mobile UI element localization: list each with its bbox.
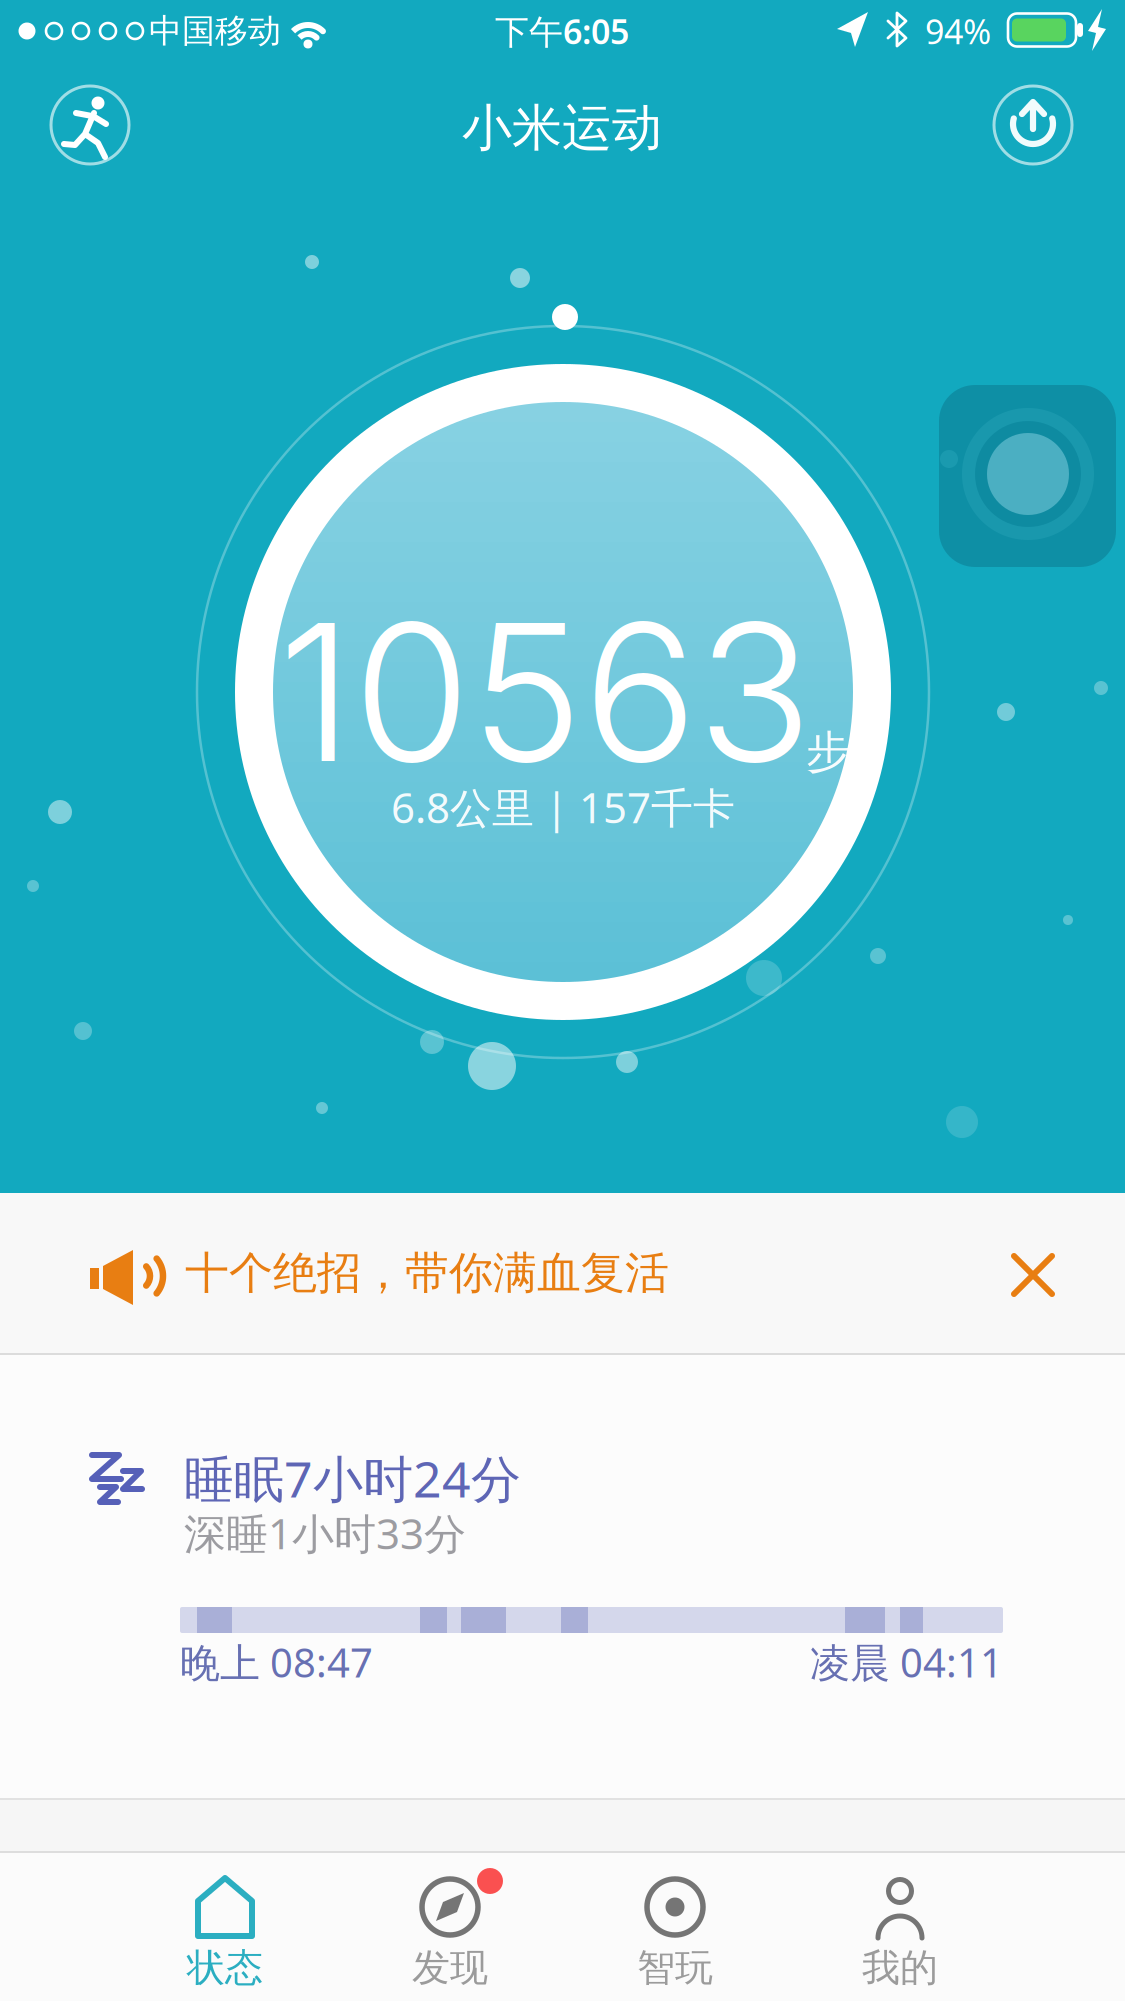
staticText: 94% xyxy=(925,8,991,54)
button[interactable]: 发现 xyxy=(337,1853,562,2001)
staticText: 小米运动 xyxy=(462,96,662,159)
button[interactable]: 状态 xyxy=(112,1853,337,2001)
button[interactable]: 智玩 xyxy=(562,1853,787,2001)
staticText: 下午6:05 xyxy=(495,8,629,54)
staticText: 晚上 08:47 xyxy=(180,1635,373,1689)
button[interactable]: 运动 xyxy=(49,84,131,166)
staticText: 睡眠7小时24分 xyxy=(184,1444,521,1512)
button[interactable]: 关闭 xyxy=(988,1230,1078,1320)
staticText: 6.8公里 | 157千卡 xyxy=(391,778,735,836)
staticText: 状态 xyxy=(187,1944,263,1992)
button[interactable]: 步数详情 xyxy=(195,324,931,1060)
staticText: 我的 xyxy=(862,1944,938,1992)
staticText: 深睡1小时33分 xyxy=(184,1504,466,1562)
staticText: 发现 xyxy=(412,1944,488,1992)
button[interactable]: 我的 xyxy=(787,1853,1012,2001)
staticText: 智玩 xyxy=(637,1944,713,1992)
staticText: 中国移动 xyxy=(149,10,281,52)
button[interactable]: 分享 xyxy=(992,84,1074,166)
staticText: 十个绝招，带你满血复活 xyxy=(185,1245,669,1301)
staticText: 步 xyxy=(806,724,850,780)
button[interactable]: 十个绝招，带你满血复活 xyxy=(0,1193,1125,1353)
staticText: 凌晨 04:11 xyxy=(810,1635,1003,1689)
staticText: 10563 xyxy=(278,577,812,807)
button[interactable]: 睡眠详情 xyxy=(0,1355,1125,1798)
